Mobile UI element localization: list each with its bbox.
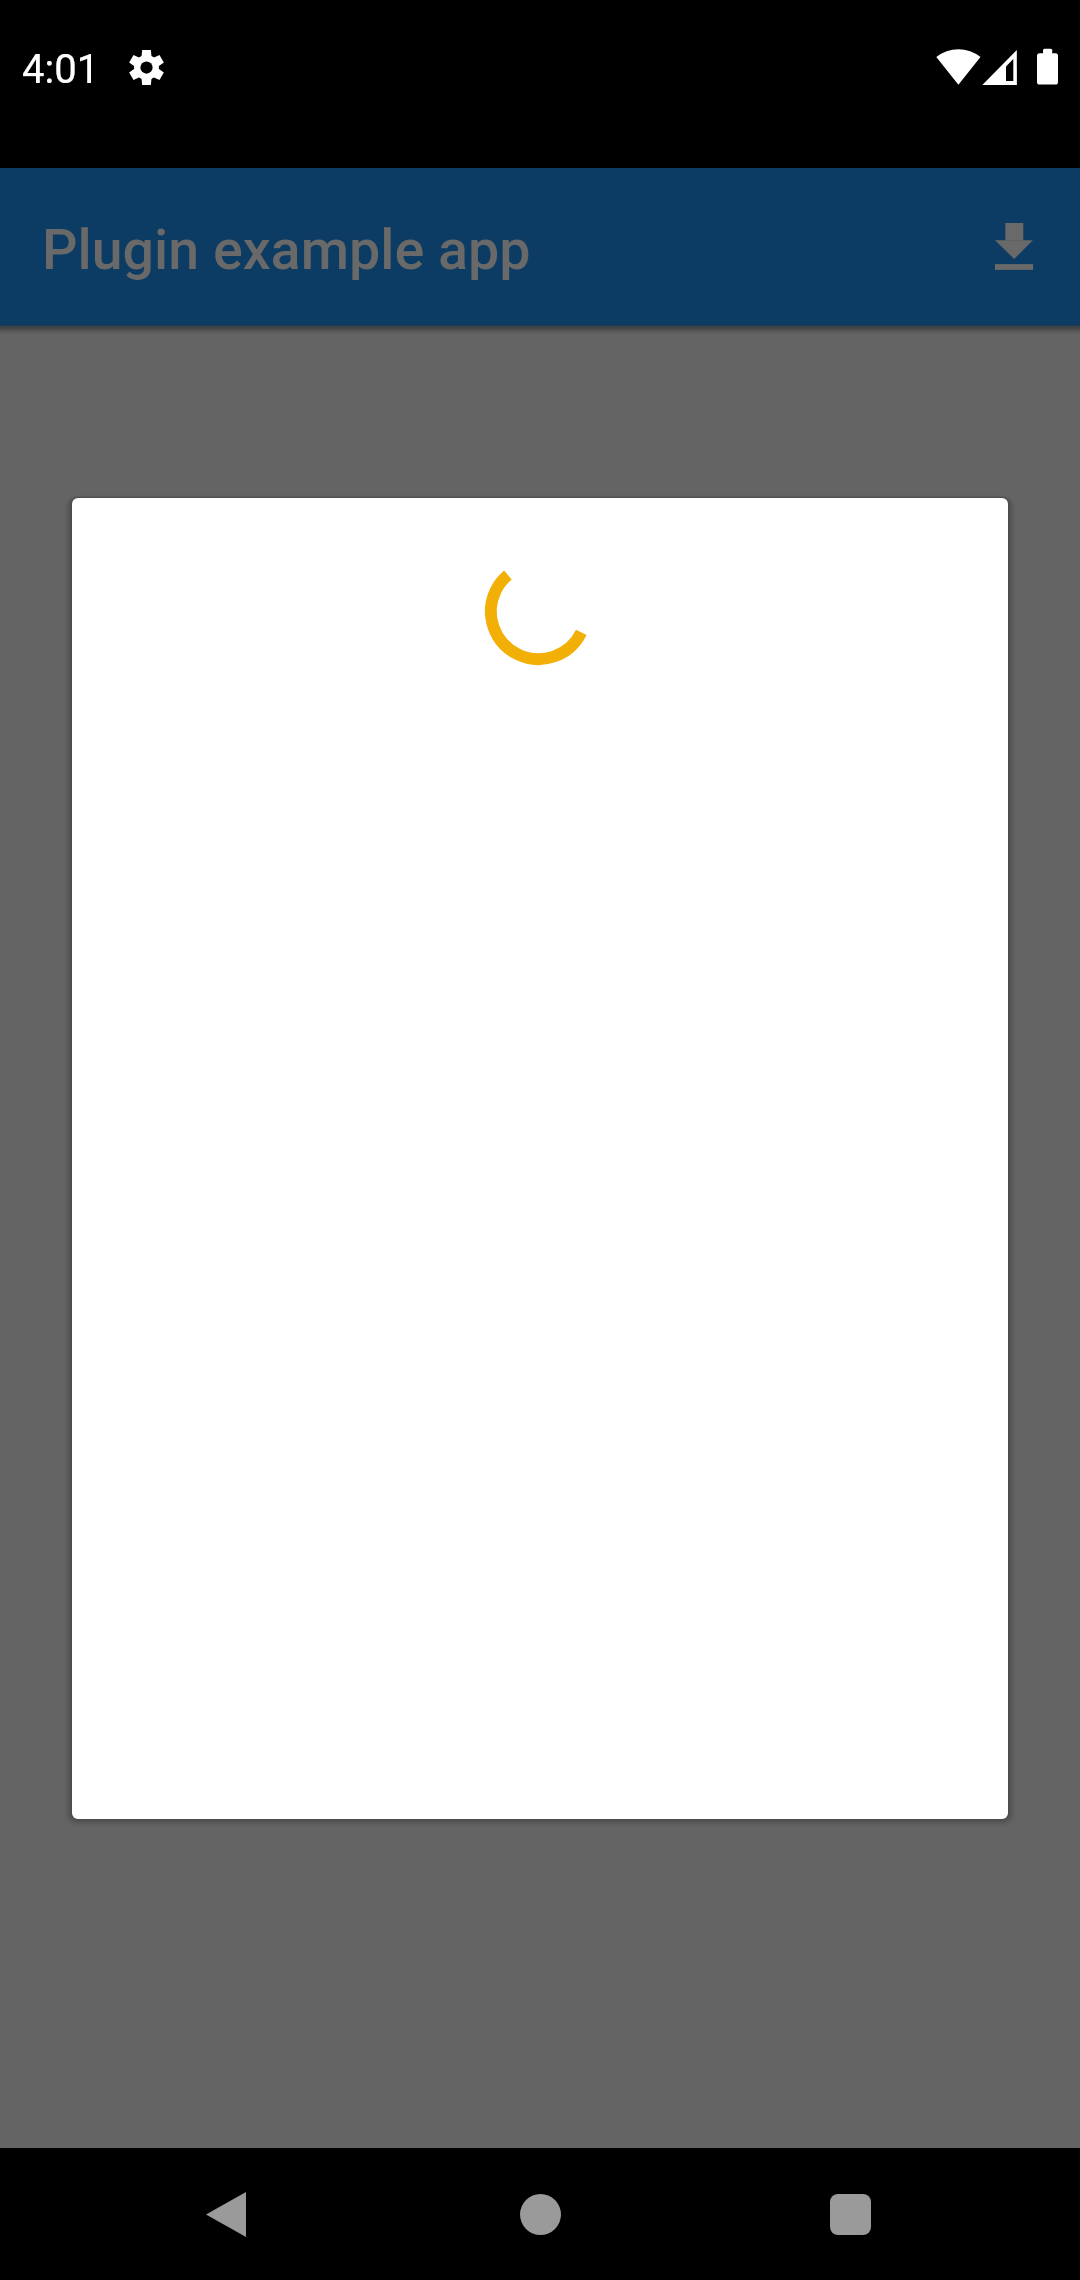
button[interactable]: Home <box>480 2154 600 2274</box>
button[interactable]: Download <box>958 186 1070 308</box>
staticText: 4:01 <box>22 46 100 93</box>
button[interactable]: Dismiss dialog <box>0 325 1080 2148</box>
button[interactable]: Recent apps <box>790 2154 910 2274</box>
button[interactable]: Back <box>166 2154 286 2274</box>
staticText: Plugin example app <box>42 218 531 283</box>
